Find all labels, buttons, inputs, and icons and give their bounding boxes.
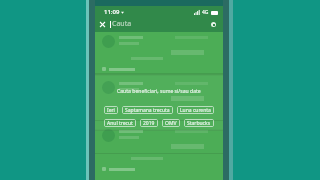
button[interactable]: OMV (162, 119, 180, 127)
staticText: 11:09 (104, 8, 120, 16)
button[interactable]: Ieri (104, 106, 118, 114)
staticText: Ieri (107, 107, 115, 114)
staticText: Luna curenta (180, 107, 211, 114)
button[interactable]: Clear text (206, 17, 220, 31)
button[interactable]: Saptamana trecuta (122, 106, 173, 114)
staticText: Saptamana trecuta (125, 107, 170, 114)
staticText: OMV (165, 120, 177, 127)
staticText: Cauta (112, 19, 132, 29)
button[interactable]: 2019 (140, 119, 158, 127)
button[interactable]: Anul trecut (104, 119, 136, 127)
button[interactable]: Starbucks (184, 119, 214, 127)
staticText: Anul trecut (107, 120, 133, 127)
staticText: 2019 (143, 120, 155, 127)
staticText: Starbucks (187, 120, 211, 127)
staticText: Cauta beneficiari, sume si/sau date (117, 88, 201, 95)
staticText: 4G (202, 9, 209, 16)
button[interactable]: Luna curenta (177, 106, 214, 114)
button[interactable]: Close search (95, 17, 110, 32)
